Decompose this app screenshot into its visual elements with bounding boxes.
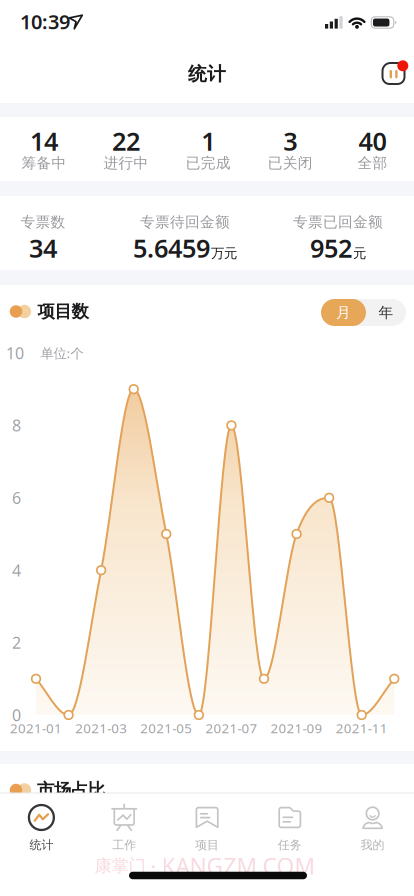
staticText: 5.6459 (133, 231, 210, 265)
staticText: 10:39 (20, 8, 70, 35)
staticText: 2021-05 (140, 719, 192, 737)
button[interactable]: 工作 (83, 793, 166, 896)
staticText: 2021-09 (271, 719, 323, 737)
staticText: 10 (6, 342, 24, 364)
staticText: 2021-07 (205, 719, 257, 737)
staticText: 40 (358, 124, 386, 158)
staticText: 我的 (361, 838, 385, 852)
button[interactable]: 项目 (166, 793, 248, 896)
button[interactable]: 我的 (331, 793, 414, 896)
staticText: 项目数 (37, 301, 88, 322)
staticText: 专票数 (20, 213, 65, 231)
staticText: 工作 (112, 838, 136, 852)
staticText: 2021-03 (75, 719, 127, 737)
staticText: KANGZM.COM (161, 851, 315, 881)
staticText: 筹备中 (21, 154, 66, 172)
staticText: 3 (283, 124, 297, 158)
staticText: 952 (310, 231, 352, 265)
staticText: 2021-01 (10, 719, 62, 737)
staticText: 专票已回金额 (293, 213, 383, 231)
staticText: 0 (12, 704, 21, 726)
button[interactable]: 统计 (0, 793, 83, 896)
staticText: 万元 (211, 245, 237, 262)
staticText: 月 (336, 303, 351, 321)
staticText: 康掌门 (94, 855, 145, 877)
staticText: 1 (201, 124, 215, 158)
staticText: 统计 (188, 62, 226, 85)
staticText: 进行中 (104, 154, 149, 172)
staticText: 2 (12, 632, 21, 653)
staticText: 全部 (357, 154, 387, 172)
staticText: 6 (12, 487, 21, 508)
staticText: 14 (30, 124, 58, 158)
staticText: 市场占比 (37, 779, 105, 801)
staticText: 任务 (278, 838, 302, 852)
staticText: 4 (12, 560, 21, 581)
staticText: 年 (378, 303, 393, 321)
staticText: 2021-11 (336, 719, 388, 737)
staticText: 22 (112, 124, 140, 158)
button[interactable]: 月 (321, 299, 406, 326)
staticText: 8 (12, 415, 21, 436)
staticText: 已完成 (186, 154, 231, 172)
staticText: 项目 (195, 838, 219, 852)
button[interactable]: 任务 (248, 793, 331, 896)
button[interactable] (371, 51, 414, 95)
staticText: 统计 (29, 838, 53, 852)
staticText: 34 (29, 231, 57, 265)
staticText: · (150, 852, 156, 880)
staticText: 单位:个 (40, 344, 83, 362)
staticText: 已关闭 (268, 154, 313, 172)
staticText: 元 (353, 245, 366, 262)
staticText: 专票待回金额 (140, 213, 230, 231)
